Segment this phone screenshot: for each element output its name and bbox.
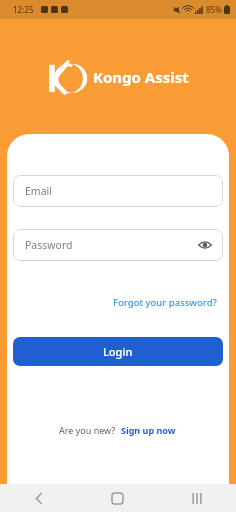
button[interactable]: Back <box>0 484 78 512</box>
staticText: 85% <box>206 4 222 15</box>
staticText: Email <box>25 184 52 198</box>
button[interactable]: Sign up now <box>119 423 178 437</box>
staticText: Sign up now <box>121 424 176 436</box>
button[interactable]: Email <box>13 175 223 207</box>
button[interactable]: Home <box>78 484 157 512</box>
button[interactable]: Recent apps <box>157 484 236 512</box>
staticText: Are you new? <box>59 424 116 436</box>
button[interactable]: Login <box>13 337 223 366</box>
button[interactable]: Password <box>13 229 223 261</box>
staticText: Password <box>25 238 73 252</box>
staticText: Forgot your password? <box>113 296 217 309</box>
button[interactable]: Show password <box>195 235 215 255</box>
staticText: 12:25 <box>13 4 34 15</box>
staticText: Login <box>103 344 133 359</box>
staticText: Kongo Assist <box>93 67 189 87</box>
button[interactable]: Forgot your password? <box>107 294 223 311</box>
